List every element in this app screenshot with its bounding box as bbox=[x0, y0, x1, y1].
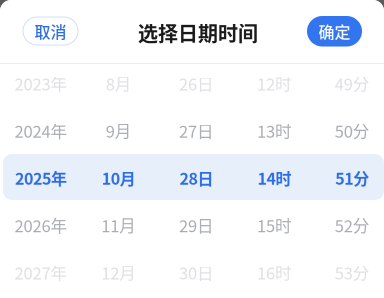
staticText: 28日 bbox=[180, 166, 214, 189]
staticText: 9月 bbox=[106, 119, 132, 142]
staticText: 27日 bbox=[179, 119, 214, 142]
staticText: 13时 bbox=[257, 119, 292, 142]
staticText: 51分 bbox=[335, 166, 369, 189]
staticText: 2026年 bbox=[14, 213, 67, 237]
staticText: 12时 bbox=[257, 71, 292, 95]
staticText: 50分 bbox=[335, 119, 370, 142]
staticText: 29日 bbox=[179, 213, 214, 237]
staticText: 16时 bbox=[257, 260, 292, 284]
button[interactable]: 确定 bbox=[307, 16, 362, 46]
staticText: 52分 bbox=[335, 213, 370, 237]
staticText: 14时 bbox=[257, 166, 291, 189]
staticText: 26日 bbox=[179, 71, 214, 95]
staticText: 选择日期时间 bbox=[138, 18, 258, 47]
staticText: 11月 bbox=[101, 213, 136, 237]
staticText: 2027年 bbox=[14, 260, 67, 284]
staticText: 确定 bbox=[318, 20, 350, 43]
staticText: 53分 bbox=[335, 260, 370, 284]
staticText: 取消 bbox=[34, 19, 66, 43]
staticText: 10月 bbox=[102, 166, 136, 189]
staticText: 15时 bbox=[257, 213, 292, 237]
staticText: 8月 bbox=[106, 71, 132, 95]
staticText: 30日 bbox=[179, 260, 214, 284]
staticText: 49分 bbox=[335, 71, 370, 95]
staticText: 2023年 bbox=[14, 71, 67, 95]
staticText: 2024年 bbox=[14, 119, 67, 142]
button[interactable]: 取消 bbox=[23, 17, 78, 45]
staticText: 12月 bbox=[101, 260, 136, 284]
staticText: 2025年 bbox=[15, 166, 67, 189]
